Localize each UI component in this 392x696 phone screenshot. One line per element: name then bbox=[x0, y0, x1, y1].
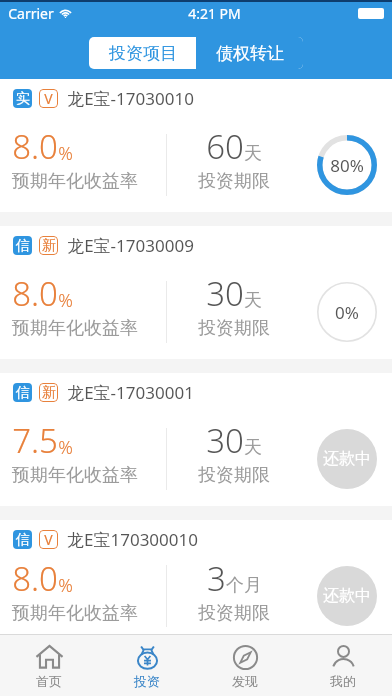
staticText: 4:21 PM bbox=[188, 4, 241, 23]
staticText: 7.5 bbox=[12, 418, 58, 463]
staticText: 投资期限 bbox=[198, 317, 270, 340]
staticText: 龙E宝170300010 bbox=[67, 528, 198, 551]
staticText: Carrier bbox=[8, 4, 54, 23]
staticText: 个月 bbox=[226, 574, 262, 597]
staticText: 0% bbox=[335, 301, 359, 324]
staticText: V bbox=[44, 89, 53, 108]
staticText: 8.0 bbox=[12, 556, 58, 601]
staticText: 投资 bbox=[134, 673, 160, 689]
staticText: 龙E宝-17030010 bbox=[67, 87, 194, 110]
staticText: V bbox=[44, 530, 53, 549]
button[interactable]: 信 bbox=[0, 226, 392, 359]
staticText: 实 bbox=[16, 90, 30, 108]
staticText: 投资期限 bbox=[198, 170, 270, 193]
staticText: 还款中 bbox=[323, 586, 371, 606]
staticText: % bbox=[58, 141, 73, 166]
staticText: 8.0 bbox=[12, 124, 58, 169]
staticText: 我的 bbox=[330, 673, 356, 689]
staticText: 30 bbox=[206, 271, 244, 316]
staticText: 60 bbox=[206, 124, 244, 169]
staticText: 预期年化收益率 bbox=[12, 602, 138, 625]
staticText: % bbox=[58, 573, 73, 598]
staticText: 龙E宝-17030001 bbox=[67, 381, 194, 404]
button[interactable]: 投资项目 bbox=[89, 37, 196, 69]
button[interactable]: Invest bbox=[98, 635, 196, 696]
button[interactable]: 实 bbox=[0, 79, 392, 212]
staticText: 预期年化收益率 bbox=[12, 317, 138, 340]
staticText: 投资项目 bbox=[109, 43, 177, 64]
staticText: 债权转让 bbox=[216, 43, 284, 64]
staticText: 天 bbox=[244, 289, 262, 312]
button[interactable]: 债权转让 bbox=[196, 37, 303, 69]
staticText: 天 bbox=[244, 142, 262, 165]
staticText: 信 bbox=[16, 384, 30, 402]
staticText: 80% bbox=[330, 154, 364, 177]
staticText: 预期年化收益率 bbox=[12, 170, 138, 193]
staticText: 信 bbox=[16, 237, 30, 255]
staticText: 3 bbox=[207, 556, 226, 601]
staticText: 还款中 bbox=[323, 449, 371, 469]
staticText: 发现 bbox=[232, 673, 258, 689]
staticText: 投资期限 bbox=[198, 464, 270, 487]
staticText: 首页 bbox=[36, 673, 62, 689]
staticText: % bbox=[58, 288, 73, 313]
staticText: 天 bbox=[244, 436, 262, 459]
staticText: 新 bbox=[42, 384, 56, 402]
staticText: 龙E宝-17030009 bbox=[67, 234, 194, 257]
staticText: 信 bbox=[16, 531, 30, 549]
button[interactable]: Discover bbox=[196, 635, 294, 696]
button[interactable]: Home bbox=[0, 635, 98, 696]
button[interactable]: 信 bbox=[0, 373, 392, 506]
staticText: 8.0 bbox=[12, 271, 58, 316]
staticText: 投资期限 bbox=[198, 602, 270, 625]
staticText: 30 bbox=[206, 418, 244, 463]
staticText: 预期年化收益率 bbox=[12, 464, 138, 487]
button[interactable]: 信 bbox=[0, 520, 392, 634]
button[interactable]: Profile bbox=[294, 635, 392, 696]
staticText: 新 bbox=[42, 237, 56, 255]
staticText: % bbox=[58, 435, 73, 460]
